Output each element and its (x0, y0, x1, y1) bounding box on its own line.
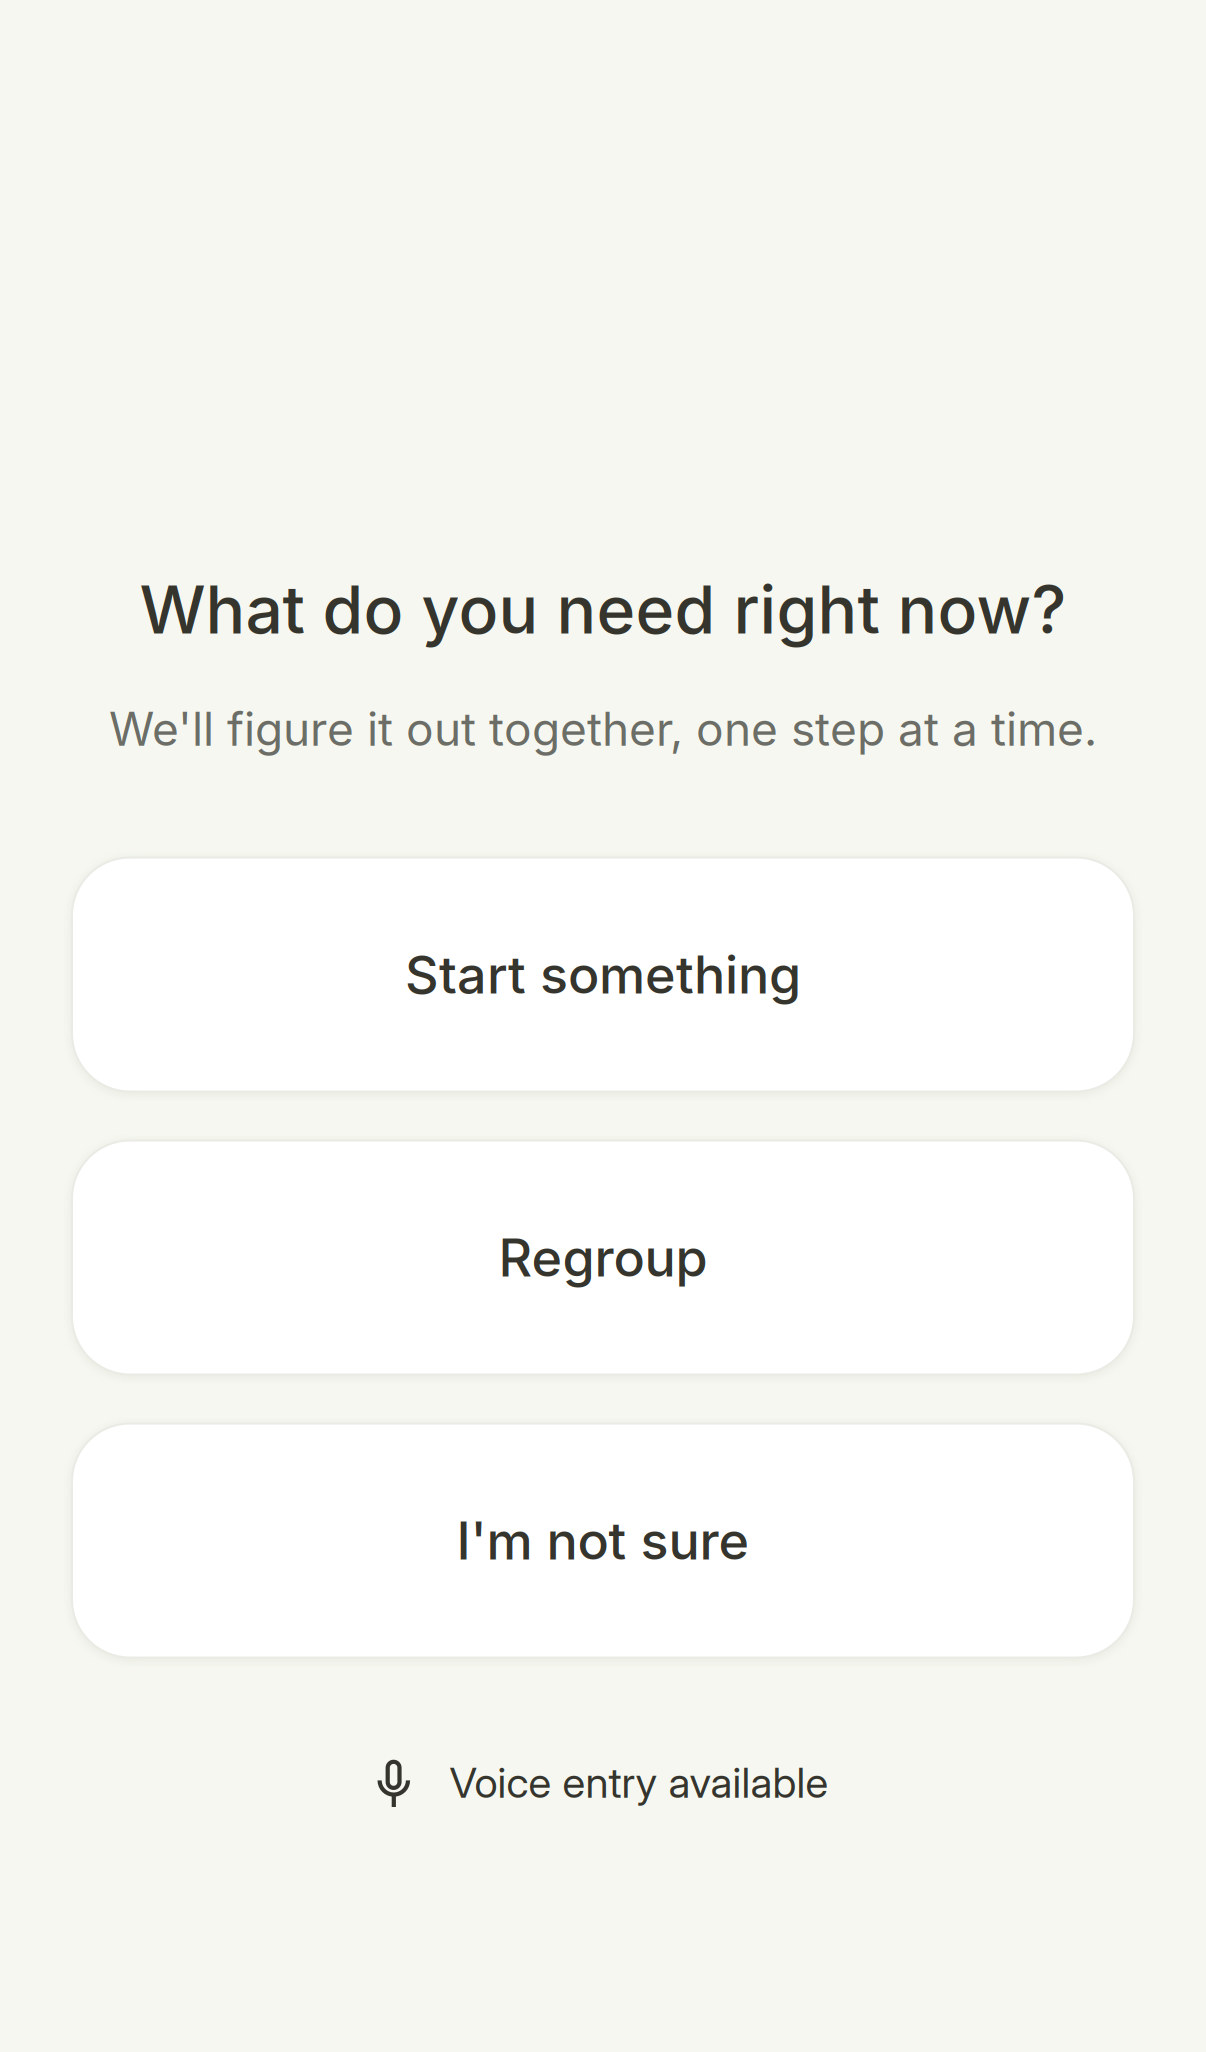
button[interactable]: Start something (72, 857, 1134, 1091)
staticText: Start something (405, 943, 801, 1006)
staticText: Regroup (498, 1226, 707, 1289)
staticText: Voice entry available (449, 1757, 828, 1808)
staticText: We'll figure it out together, one step a… (109, 701, 1097, 757)
button[interactable]: Regroup (72, 1140, 1134, 1374)
button[interactable]: I'm not sure (72, 1423, 1134, 1657)
staticText: What do you need right now? (139, 570, 1066, 649)
button[interactable]: Voice entry available (0, 1752, 1206, 1812)
staticText: I'm not sure (456, 1509, 749, 1572)
